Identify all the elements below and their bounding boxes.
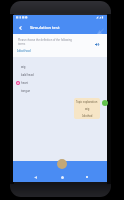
staticText: Topic explanation [76, 100, 98, 104]
button[interactable]: heart [13, 79, 107, 87]
staticText: Idiothod [17, 48, 31, 53]
staticText: heart [21, 81, 28, 85]
staticText: wig [85, 107, 90, 111]
button[interactable]: Topic explanation [74, 98, 100, 119]
staticText: wig [21, 65, 26, 69]
button[interactable]: Recent apps [82, 172, 92, 182]
button[interactable]: Hint [102, 100, 108, 106]
button[interactable]: bald head [13, 71, 107, 79]
button[interactable]: tongue [13, 87, 107, 95]
button[interactable]: Navigate back [15, 23, 25, 33]
staticText: Please choose the definition of the foll… [18, 38, 72, 46]
button[interactable]: Home [57, 172, 67, 182]
button[interactable]: wig [13, 63, 107, 71]
staticText: tongue [21, 89, 31, 93]
staticText: Idiothod [82, 114, 93, 118]
button[interactable]: Profile [57, 159, 67, 169]
button[interactable]: Back [30, 172, 40, 182]
staticText: bald head [21, 73, 34, 77]
button[interactable]: Play pronunciation [92, 40, 101, 49]
staticText: Simulation test [30, 25, 60, 31]
